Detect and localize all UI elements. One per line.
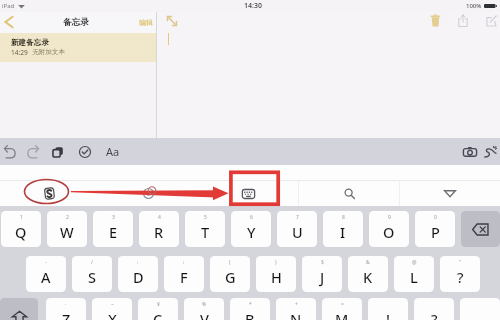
button[interactable]: Markup [481,140,500,163]
staticText: Aa [106,144,120,159]
button[interactable] [460,298,500,320]
staticText: J [320,267,325,287]
button[interactable]: Shift [0,298,38,320]
button[interactable]: Keyboard [198,181,298,206]
button[interactable]: 4 [139,211,179,247]
staticText: = [341,301,344,308]
staticText: B [245,309,255,320]
button[interactable]: @ [394,256,434,292]
button[interactable]: Aa [102,141,124,162]
button[interactable]: ; [164,256,204,292]
button[interactable]: 9 [369,211,409,247]
button[interactable]: Redo [24,140,42,163]
staticText: A [41,267,51,287]
staticText: ? [431,309,438,320]
staticText: S [88,267,96,287]
staticText: 1 [20,214,23,221]
button[interactable]: / [72,256,112,292]
button[interactable]: 6 [231,211,271,247]
staticText: & [366,259,370,266]
staticText: : [137,259,139,266]
staticText: K [363,267,373,287]
staticText: X [108,309,117,320]
staticText: * [249,301,252,308]
button[interactable]: 3 [93,211,133,247]
staticText: 5 [204,214,207,221]
button[interactable]: Camera [460,140,480,163]
button[interactable]: & [348,256,388,292]
button[interactable]: Search [299,181,399,206]
staticText: C [153,309,163,320]
staticText: T [201,222,210,242]
button[interactable]: 5 [185,211,225,247]
button[interactable]: 2 [47,211,87,247]
staticText: 9 [388,214,391,221]
button[interactable]: ~ [92,298,132,320]
button[interactable]: : [118,256,158,292]
button[interactable]: ( [210,256,250,292]
button[interactable]: ) [256,256,296,292]
staticText: L [410,267,418,287]
staticText: R [154,222,164,242]
staticText: Y [247,222,256,242]
button[interactable]: · [46,298,86,320]
button[interactable]: + [276,298,316,320]
button[interactable]: 8 [323,211,363,247]
staticText: 8 [342,214,345,221]
button[interactable]: ? [414,298,454,320]
button[interactable]: Checklist [76,140,94,163]
button[interactable]: Undo [1,140,19,163]
staticText: ) [275,259,277,266]
button[interactable]: 编辑 [135,13,157,31]
staticText: 新建备忘录 [11,38,49,48]
button[interactable]: Emoji [99,181,198,206]
staticText: ! [386,309,390,320]
button[interactable]: ¥ [138,298,178,320]
staticText: 4 [158,214,161,221]
staticText: M [335,309,349,320]
staticText: E [109,222,118,242]
staticText: 2 [66,214,69,221]
button[interactable]: 7 [277,211,317,247]
staticText: W [60,222,74,242]
button[interactable]: ! [368,298,408,320]
button[interactable]: Expand [163,12,180,29]
staticText: 无附加文本 [32,48,65,56]
button[interactable]: = [322,298,362,320]
staticText: " [459,259,462,266]
button[interactable]: 0 [415,211,455,247]
staticText: iPad [2,2,15,10]
button[interactable]: - [26,256,66,292]
button[interactable]: % [184,298,224,320]
staticText: O [383,222,395,242]
staticText: / [91,259,93,266]
button[interactable]: Backspace [461,211,500,247]
staticText: - [45,259,47,266]
button[interactable]: Collapse keyboard [400,181,500,206]
staticText: ~ [111,301,114,308]
staticText: 0 [434,214,437,221]
staticText: 100% [466,2,482,10]
staticText: $ [321,259,324,266]
button[interactable]: Copy [49,140,67,163]
button[interactable]: * [230,298,270,320]
button[interactable]: Sogou keyboard [0,181,99,206]
staticText: I [340,222,346,242]
staticText: G [225,267,236,287]
staticText: 备忘录 [63,17,89,28]
staticText: F [180,267,188,287]
staticText: Q [15,222,27,242]
button[interactable]: 新建备忘录 [0,33,156,62]
button[interactable]: Compose [482,12,500,29]
staticText: + [295,301,298,308]
button[interactable]: Share [454,12,472,29]
button[interactable]: " [440,256,480,292]
staticText: 7 [296,214,299,221]
staticText: U [292,222,303,242]
button[interactable]: Delete [426,12,444,29]
button[interactable]: 1 [1,211,41,247]
button[interactable]: Back [0,13,16,31]
staticText: % [202,301,207,308]
button[interactable]: $ [302,256,342,292]
staticText: @ [412,259,417,266]
